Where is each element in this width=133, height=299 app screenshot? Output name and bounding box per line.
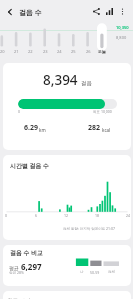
staticText: 21 [14, 49, 19, 54]
staticText: 25 [71, 49, 76, 54]
button[interactable]: 20 [0, 0, 133, 299]
staticText: 10,350 [116, 25, 129, 30]
staticText: km [39, 127, 46, 133]
staticText: 오늘 [98, 49, 106, 54]
staticText: 6,297 [21, 261, 42, 272]
staticText: 6.29 [24, 123, 38, 133]
staticText: 12 [64, 213, 69, 218]
button[interactable]: More options [115, 4, 129, 18]
staticText: 시간별 걸음 수 [10, 162, 50, 170]
staticText: 24 [57, 49, 62, 54]
staticText: kcal [102, 127, 111, 133]
staticText: 걸음 수 비교 [10, 249, 44, 257]
staticText: 6 [35, 213, 38, 218]
staticText: 282 [88, 123, 101, 133]
staticText: 0 [5, 213, 8, 218]
staticText: 전체 [108, 270, 115, 274]
button[interactable]: Back [2, 4, 18, 20]
staticText: 20 [0, 49, 5, 54]
staticText: 18 [95, 213, 100, 218]
staticText: 24 [126, 213, 131, 218]
staticText: 0 [18, 109, 21, 114]
button[interactable]: 시간별 걸음 수 [3, 155, 131, 240]
button[interactable]: Share [89, 4, 103, 18]
staticText: 평균 [9, 265, 21, 272]
staticText: 목표 10,000 [93, 109, 112, 114]
staticText: 23 [43, 49, 48, 54]
button[interactable]: 걸음 수 비교 [3, 245, 131, 286]
staticText: 8,394 [43, 71, 78, 89]
staticText: 전체 동향: 마지막 업데이트 21:07 [63, 226, 116, 231]
staticText: 8,800 [116, 35, 127, 40]
staticText: 활동 시간 [7, 297, 31, 299]
staticText: 상위 28% [9, 270, 24, 275]
button[interactable]: Trends [102, 4, 116, 18]
staticText: 나 [80, 270, 84, 274]
staticText: 26 [86, 49, 91, 54]
button[interactable]: 활동 시간 [3, 291, 131, 299]
button[interactable]: 8,394 [3, 63, 131, 150]
staticText: 22 [28, 49, 33, 54]
staticText: 걸음 수 [19, 8, 42, 18]
staticText: 50-59 [90, 270, 100, 275]
staticText: 걸음 [81, 80, 92, 87]
